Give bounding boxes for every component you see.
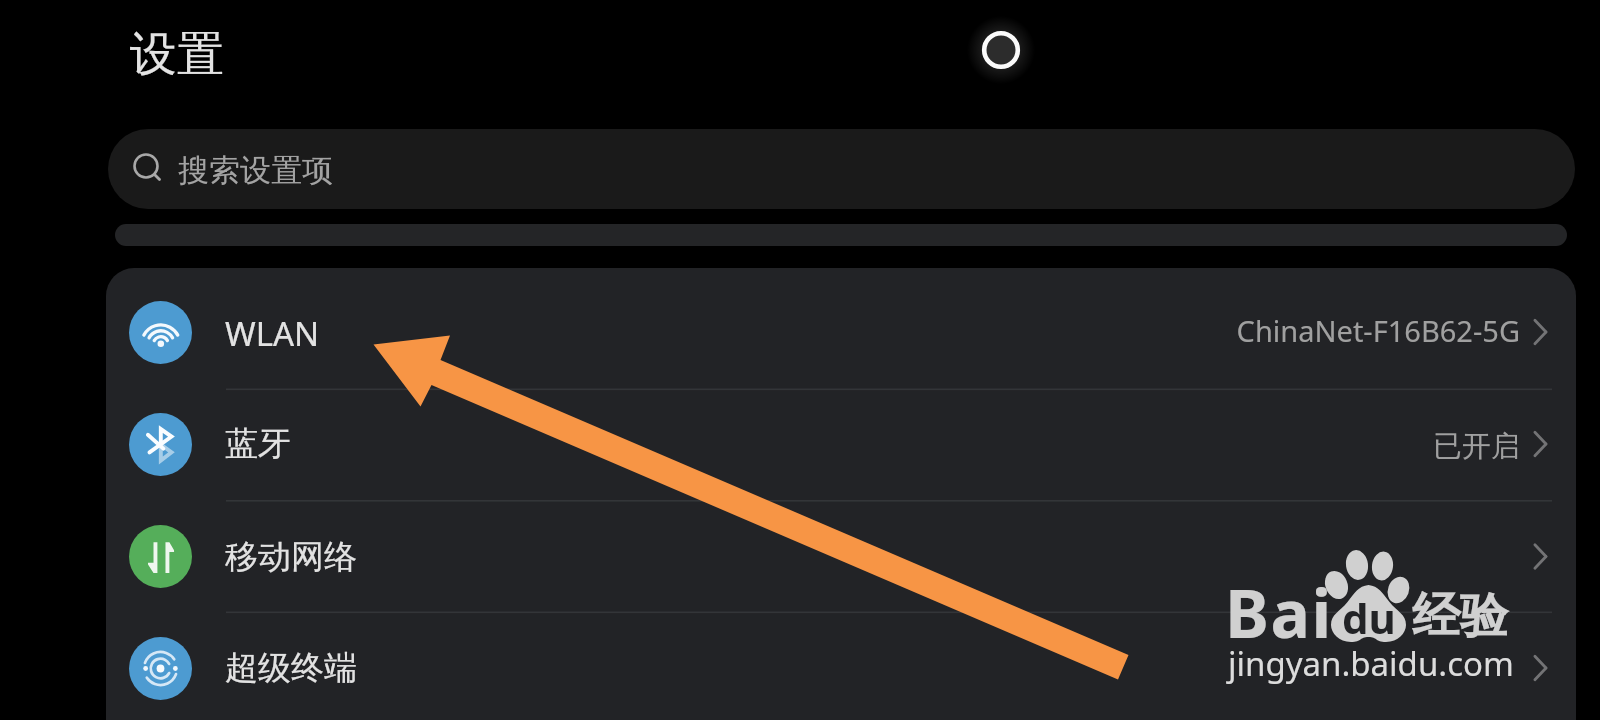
button[interactable]: 移动网络 xyxy=(106,501,1576,613)
button[interactable]: WLAN xyxy=(106,268,1576,389)
staticText: 蓝牙 xyxy=(225,423,291,465)
staticText: 搜索设置项 xyxy=(178,151,333,190)
staticText: ChinaNet-F16B62-5G xyxy=(1120,311,1520,432)
button[interactable]: 超级终端 xyxy=(106,612,1576,720)
staticText: du xyxy=(1342,589,1396,646)
staticText: 移动网络 xyxy=(225,536,357,578)
staticText: 设置 xyxy=(130,25,224,84)
button[interactable]: Search settings xyxy=(108,129,1575,209)
staticText: 经验 xyxy=(1412,586,1508,646)
staticText: 已开启 xyxy=(1120,428,1520,540)
staticText: jingyan.baidu.com xyxy=(1228,641,1514,686)
staticText: Bai xyxy=(1225,567,1333,657)
staticText: WLAN xyxy=(225,311,320,356)
button[interactable]: 蓝牙 xyxy=(106,389,1576,501)
staticText: 超级终端 xyxy=(225,647,357,689)
